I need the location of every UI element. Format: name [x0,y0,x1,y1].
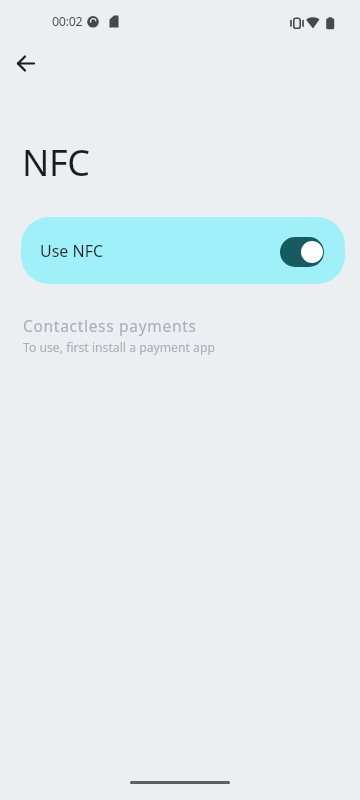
staticText: Use NFC [40,240,104,262]
button[interactable] [10,47,42,79]
staticText: To use, first install a payment app [23,339,215,356]
staticText: Contactless payments [23,315,197,336]
button[interactable]: Contactless payments [0,310,360,366]
staticText: 00:02 [52,13,83,30]
button[interactable]: Use NFC [21,217,345,284]
staticText: NFC [22,138,90,187]
